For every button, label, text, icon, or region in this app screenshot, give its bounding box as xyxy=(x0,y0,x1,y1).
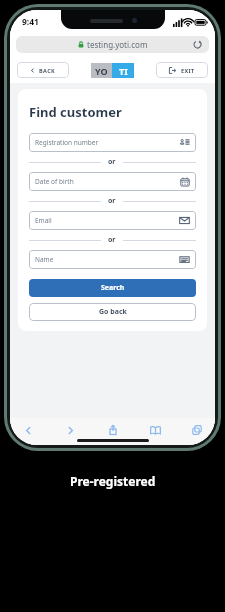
button[interactable]: Bookmarks xyxy=(147,422,163,438)
button[interactable]: Reload xyxy=(192,39,203,50)
button[interactable]: BACK xyxy=(17,62,69,78)
button[interactable]: Name xyxy=(29,250,196,269)
button[interactable]: Date of birth xyxy=(29,172,196,191)
staticText: 9:41 xyxy=(22,16,39,28)
staticText: or xyxy=(108,157,116,167)
staticText: YO xyxy=(95,65,108,77)
button[interactable]: Email xyxy=(29,211,196,230)
staticText: TI xyxy=(119,65,128,77)
staticText: Pre-registered xyxy=(70,473,156,489)
staticText: testing.yoti.com xyxy=(87,39,148,50)
button[interactable]: EXIT xyxy=(156,62,208,78)
staticText: Registration number xyxy=(35,138,99,147)
staticText: or xyxy=(108,235,116,245)
staticText: Name xyxy=(35,255,54,264)
button[interactable]: Forward xyxy=(62,422,78,438)
button[interactable]: Share xyxy=(105,422,121,438)
staticText: Email xyxy=(35,216,52,225)
button[interactable]: Search xyxy=(29,279,196,297)
staticText: Go back xyxy=(99,307,127,317)
button[interactable]: Yoti logo xyxy=(91,63,134,78)
button[interactable]: Back xyxy=(20,422,36,438)
button[interactable]: Go back xyxy=(29,303,196,321)
staticText: BACK xyxy=(39,67,56,74)
staticText: Search xyxy=(101,283,125,293)
button[interactable]: Tabs xyxy=(189,422,205,438)
staticText: EXIT xyxy=(181,67,195,74)
staticText: or xyxy=(108,196,116,206)
button[interactable]: Registration number xyxy=(29,133,196,152)
staticText: Find customer xyxy=(29,103,122,121)
staticText: Date of birth xyxy=(35,177,74,186)
